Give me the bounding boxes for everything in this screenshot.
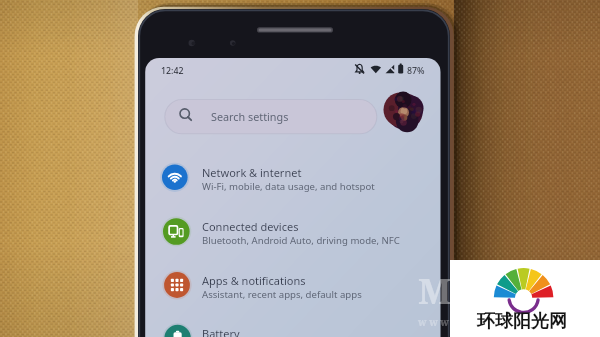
staticText: 环球阳光网 bbox=[477, 310, 567, 333]
staticText: Battery bbox=[202, 326, 240, 337]
staticText: Assistant, recent apps, default apps bbox=[202, 288, 362, 301]
staticText: 87% bbox=[407, 65, 425, 77]
button[interactable]: Status bar bbox=[145, 58, 440, 92]
staticText: Bluetooth, Android Auto, driving mode, N… bbox=[202, 234, 400, 247]
button[interactable]: Search settings bbox=[164, 98, 375, 132]
staticText: Connected devices bbox=[202, 219, 299, 234]
staticText: Apps & notifications bbox=[202, 273, 306, 288]
button[interactable]: Connected devices bbox=[145, 205, 440, 257]
button[interactable]: Network & internet bbox=[145, 151, 440, 203]
staticText: Wi-Fi, mobile, data usage, and hotspot bbox=[202, 180, 375, 193]
button[interactable]: Account avatar bbox=[386, 93, 423, 130]
staticText: w w w bbox=[418, 315, 449, 329]
staticText: Network & internet bbox=[202, 165, 302, 180]
staticText: Search settings bbox=[211, 109, 289, 124]
staticText: 12:42 bbox=[161, 65, 184, 77]
staticText: M bbox=[418, 267, 452, 315]
button[interactable]: Battery bbox=[145, 312, 440, 337]
button[interactable]: Apps & notifications bbox=[145, 259, 440, 311]
